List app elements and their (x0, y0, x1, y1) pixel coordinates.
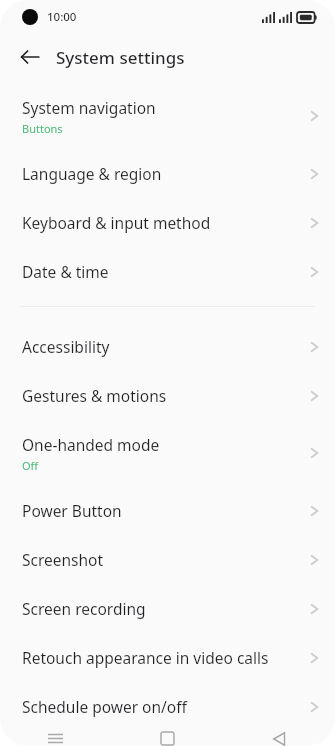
button[interactable]: Back (12, 39, 48, 75)
button[interactable]: Language & region (0, 149, 335, 198)
button[interactable]: Gestures & motions (0, 371, 335, 420)
staticText: Retouch appearance in video calls (22, 647, 269, 668)
staticText: Power Button (22, 500, 122, 521)
button[interactable]: Retouch appearance in video calls (0, 633, 335, 682)
button[interactable]: Screen recording (0, 584, 335, 633)
staticText: Accessibility (22, 336, 110, 357)
button[interactable]: Home (111, 731, 223, 746)
staticText: Screenshot (22, 549, 104, 570)
staticText: System settings (56, 46, 185, 69)
staticText: Date & time (22, 261, 109, 282)
button[interactable]: Keyboard & input method (0, 198, 335, 247)
button[interactable]: System navigation (0, 83, 335, 149)
button[interactable]: Back (223, 731, 335, 746)
button[interactable]: Schedule power on/off (0, 682, 335, 731)
button[interactable]: Recent apps (0, 731, 111, 746)
staticText: Screen recording (22, 598, 146, 619)
button[interactable]: Accessibility (0, 322, 335, 371)
staticText: Buttons (22, 121, 63, 136)
button[interactable]: Power Button (0, 486, 335, 535)
staticText: One-handed mode (22, 434, 160, 455)
staticText: 10:00 (47, 9, 77, 25)
staticText: Gestures & motions (22, 385, 167, 406)
staticText: Language & region (22, 163, 162, 184)
button[interactable]: Date & time (0, 247, 335, 296)
button[interactable]: One-handed mode (0, 420, 335, 486)
staticText: System navigation (22, 97, 156, 118)
button[interactable]: Screenshot (0, 535, 335, 584)
staticText: Schedule power on/off (22, 696, 187, 717)
staticText: Keyboard & input method (22, 212, 211, 233)
staticText: Off (22, 458, 39, 473)
